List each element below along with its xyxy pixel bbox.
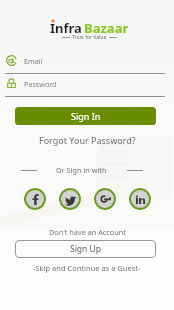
staticText: Bazaar <box>84 19 129 37</box>
button[interactable]: Sign in with Facebook <box>24 188 46 210</box>
button[interactable]: Sign Up <box>15 240 156 258</box>
button[interactable]: Sign in with Twitter <box>59 188 81 210</box>
staticText: Or Sign in with <box>56 165 107 175</box>
button[interactable]: Sign in with Google Plus <box>94 188 116 210</box>
staticText: Sign Up <box>70 243 101 255</box>
staticText: Don't have an Account <box>49 227 126 237</box>
staticText: Trust for Value <box>72 34 107 41</box>
button[interactable]: Sign in with LinkedIn <box>129 188 151 210</box>
staticText: Sign In <box>71 110 101 122</box>
staticText: Infra <box>50 19 82 37</box>
staticText: Forgot Your Password? <box>39 134 136 146</box>
button[interactable]: Sign In <box>15 107 156 125</box>
staticText: -Skip and Continue as a Guest- <box>33 263 141 273</box>
staticText: Password <box>24 79 57 89</box>
button[interactable]: Forgot Your Password? <box>37 132 138 148</box>
staticText: Email <box>24 56 43 66</box>
button[interactable]: -Skip and Continue as a Guest- <box>31 261 143 275</box>
